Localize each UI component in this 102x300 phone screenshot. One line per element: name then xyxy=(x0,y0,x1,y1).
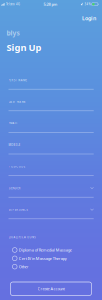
button[interactable]: EMAIL xyxy=(8,111,94,133)
button[interactable]: Diploma of Remedial Massage xyxy=(12,246,92,254)
staticText: EXPERIENCE xyxy=(8,208,28,211)
staticText: Diploma of Remedial Massage xyxy=(19,247,72,253)
staticText: EMAIL xyxy=(8,122,17,125)
staticText: Telstra xyxy=(6,2,14,6)
staticText: 5:28 pm xyxy=(43,2,57,7)
staticText: Cert IV in Massage Therapy xyxy=(19,256,67,261)
button[interactable]: LAST NAME xyxy=(8,89,94,111)
staticText: LAST NAME xyxy=(8,100,25,103)
button[interactable]: Other xyxy=(12,262,92,271)
staticText: Create Account xyxy=(37,286,64,291)
staticText: MOBILE xyxy=(8,143,20,147)
staticText: GENDER xyxy=(8,186,21,190)
staticText: Sign Up xyxy=(6,41,41,54)
staticText: QUALIFICATIONS xyxy=(8,235,35,239)
staticText: 34% xyxy=(84,2,90,6)
button[interactable]: FIRST NAME xyxy=(8,68,94,89)
button[interactable]: MOBILE xyxy=(8,133,94,154)
staticText: Other xyxy=(19,264,29,269)
staticText: Login xyxy=(82,15,96,22)
button[interactable]: GENDER xyxy=(8,176,94,197)
button[interactable]: EXPERIENCE xyxy=(8,197,94,219)
button[interactable]: Cert IV in Massage Therapy xyxy=(12,254,92,262)
staticText: FIRST NAME xyxy=(8,78,27,82)
button[interactable]: POSTCODE xyxy=(8,154,94,176)
staticText: 4G xyxy=(16,2,20,6)
staticText: POSTCODE xyxy=(8,165,25,168)
button[interactable]: Login xyxy=(70,12,96,24)
staticText: blys xyxy=(6,28,19,37)
button[interactable]: Create Account xyxy=(10,282,91,295)
